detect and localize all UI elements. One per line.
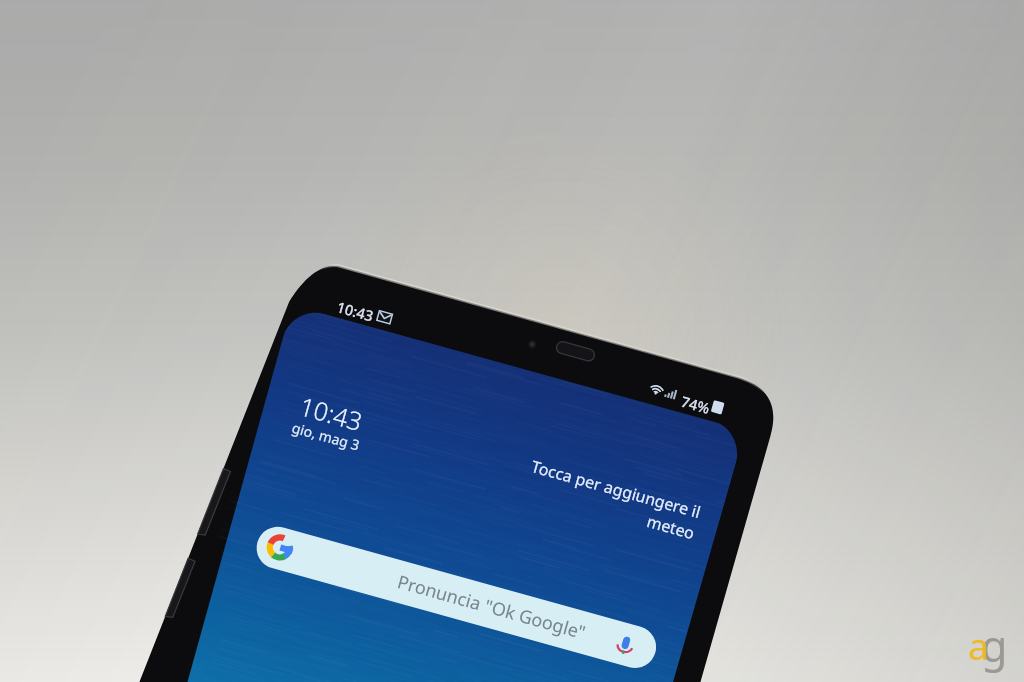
button[interactable] (0, 0, 1024, 682)
